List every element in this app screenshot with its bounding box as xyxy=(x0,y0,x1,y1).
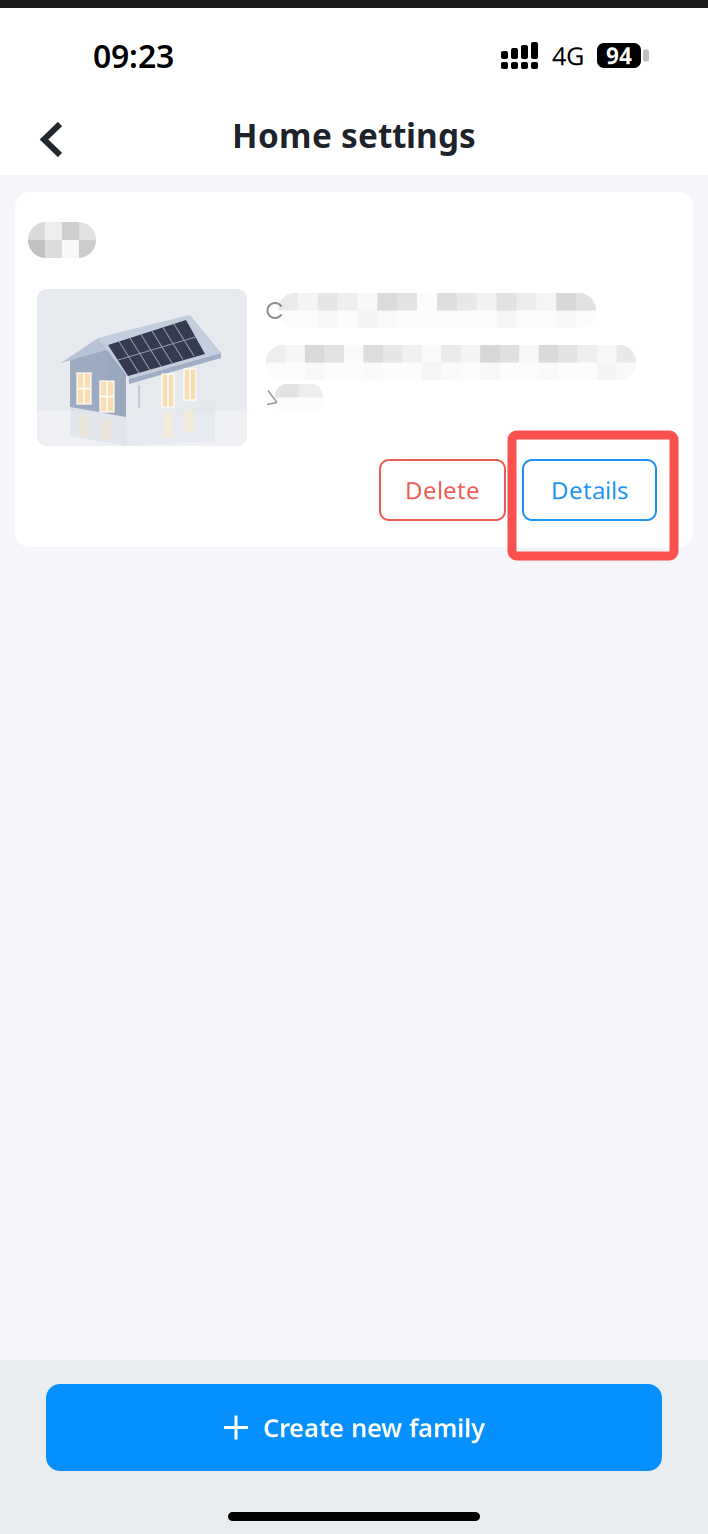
staticText: 4G xyxy=(552,39,584,72)
staticText: 09:23 xyxy=(93,34,174,77)
button[interactable]: Back xyxy=(0,89,93,171)
staticText: 94 xyxy=(606,40,632,70)
button[interactable]: Details xyxy=(523,460,656,520)
staticText: Create new family xyxy=(263,1411,485,1444)
staticText: Delete xyxy=(405,474,480,506)
button[interactable]: Delete xyxy=(380,460,505,520)
button[interactable]: Create new family xyxy=(46,1384,662,1471)
staticText: Details xyxy=(551,474,628,506)
staticText: Home settings xyxy=(232,113,476,157)
